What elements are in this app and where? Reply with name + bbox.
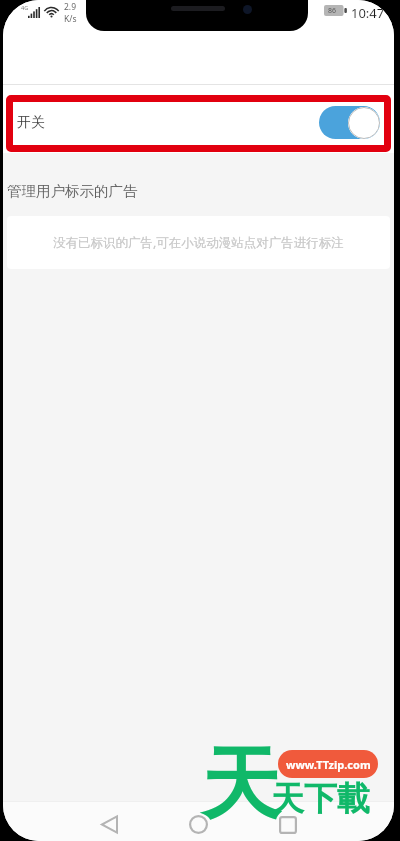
staticText: 开关 — [17, 114, 45, 132]
button[interactable]: Recent apps — [264, 808, 312, 841]
staticText: 天下載 — [271, 778, 370, 820]
staticText: 4G — [21, 4, 29, 11]
staticText: 管理用户标示的广告 — [7, 182, 138, 200]
button[interactable] — [3, 85, 394, 153]
staticText: 没有已标识的广告,可在小说动漫站点对广告进行标注 — [53, 234, 344, 251]
staticText: K/s — [64, 13, 77, 25]
staticText: 2.9 — [64, 1, 77, 13]
staticText: www.TTzip.com — [286, 757, 371, 772]
staticText: 86 — [328, 6, 337, 16]
button[interactable]: 没有已标识的广告,可在小说动漫站点对广告进行标注 — [7, 216, 390, 269]
button[interactable]: Home — [174, 808, 222, 841]
staticText: 天 — [201, 735, 280, 835]
button[interactable]: Back — [85, 808, 133, 841]
button[interactable]: Toggle switch — [319, 106, 380, 139]
staticText: 10:47 — [351, 4, 385, 22]
